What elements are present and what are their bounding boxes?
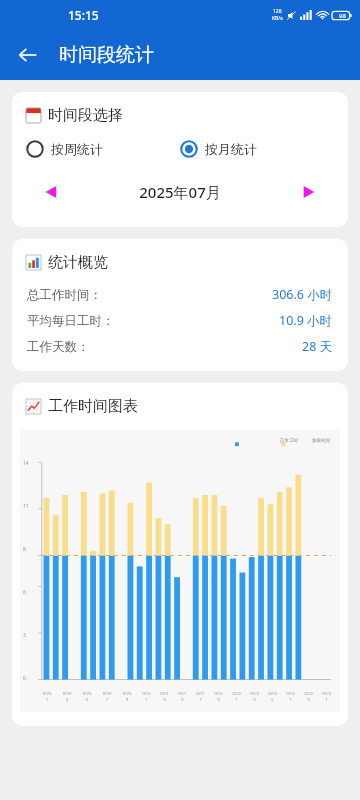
staticText: 07/19 [214, 691, 223, 703]
staticText: 时间段选择 [48, 106, 123, 125]
staticText: 07/05 [82, 691, 92, 703]
staticText: 10.9 小时 [279, 312, 333, 329]
staticText: 工作时间图表 [48, 397, 138, 416]
staticText: 07/21 [232, 691, 241, 703]
staticText: 15:15 [68, 7, 99, 23]
staticText: 按周统计 [51, 141, 103, 157]
staticText: 07/07 [102, 691, 112, 703]
staticText: 07/27 [286, 691, 295, 703]
staticText: 8 [23, 546, 26, 553]
staticText: 6 [23, 589, 26, 596]
staticText: 07/15 [178, 691, 187, 703]
staticText: 07/11 [142, 691, 151, 703]
staticText: 07/09 [122, 691, 132, 703]
staticText: 07/23 [250, 691, 259, 703]
button[interactable]: 按月统计 [180, 140, 334, 158]
staticText: 306.6 小时 [272, 286, 333, 303]
staticText: 加班时间 [312, 438, 330, 444]
button[interactable]: 按周统计 [26, 140, 180, 158]
staticText: 按月统计 [205, 141, 257, 157]
staticText: 07/17 [196, 691, 205, 703]
staticText: 28 天 [302, 338, 333, 355]
staticText: KB/s [272, 15, 283, 22]
staticText: 07/29 [304, 691, 313, 703]
staticText: 98 [339, 12, 346, 20]
staticText: 14 [23, 460, 29, 467]
staticText: 07/13 [160, 691, 169, 703]
staticText: 07/31 [322, 691, 331, 703]
staticText: 11 [23, 503, 29, 510]
staticText: 总工作时间： [27, 287, 102, 303]
staticText: 工作天数： [27, 339, 90, 355]
staticText: 126 [273, 8, 282, 15]
staticText: 0 [23, 675, 26, 682]
staticText: 正常工时 [280, 438, 298, 444]
staticText: 3 [23, 632, 26, 639]
button[interactable]: Next month [292, 175, 326, 209]
staticText: 2025年07月 [68, 182, 292, 202]
staticText: 统计概览 [48, 253, 108, 272]
staticText: 07/01 [42, 691, 52, 703]
staticText: 平均每日工时： [27, 313, 115, 329]
staticText: 07/03 [62, 691, 72, 703]
staticText: 07/25 [268, 691, 277, 703]
button[interactable]: Previous month [34, 175, 68, 209]
staticText: 时间段统计 [59, 43, 154, 67]
button[interactable]: Back [6, 33, 50, 77]
